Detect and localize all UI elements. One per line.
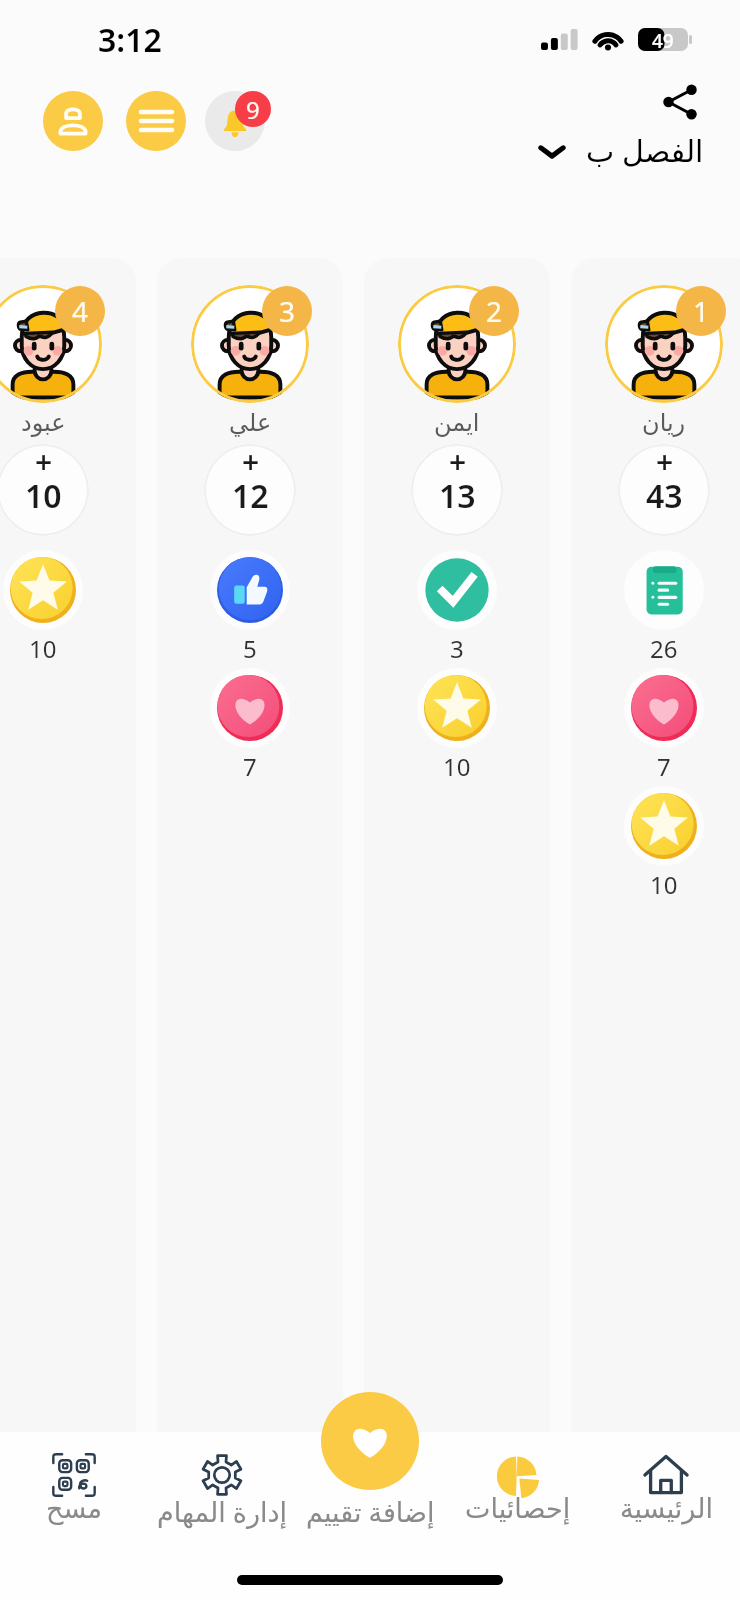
staticText: 3:12 — [98, 18, 162, 62]
button[interactable]: Menu — [126, 91, 186, 151]
button[interactable]: إحصائيات — [444, 1432, 592, 1600]
staticText: 4 — [72, 292, 89, 330]
button[interactable]: 2 — [364, 258, 550, 1600]
staticText: 2 — [486, 292, 503, 330]
button[interactable] — [624, 550, 704, 630]
staticText: إحصائيات — [465, 1493, 571, 1524]
button[interactable]: + — [204, 444, 296, 536]
staticText: 3 — [450, 632, 464, 665]
staticText: + — [656, 444, 674, 482]
button[interactable] — [210, 550, 290, 630]
staticText: + — [449, 444, 467, 482]
button[interactable]: + — [618, 444, 710, 536]
staticText: 9 — [246, 93, 260, 126]
staticText: 10 — [650, 868, 678, 901]
staticText: + — [242, 444, 260, 482]
button[interactable] — [624, 668, 704, 748]
button[interactable]: إدارة المهام — [148, 1432, 296, 1600]
button[interactable]: 3 — [157, 258, 343, 1600]
button[interactable] — [624, 786, 704, 866]
staticText: عبود — [21, 409, 66, 437]
button[interactable]: Share — [656, 78, 704, 126]
button[interactable]: Notifications — [205, 91, 265, 151]
button[interactable]: إضافة تقييم — [296, 1432, 444, 1600]
staticText: + — [35, 444, 53, 482]
staticText: 10 — [29, 632, 57, 665]
staticText: 43 — [646, 474, 683, 518]
staticText: الفصل ب — [586, 130, 704, 171]
button[interactable] — [210, 668, 290, 748]
staticText: إدارة المهام — [157, 1493, 287, 1530]
staticText: مسح — [46, 1493, 102, 1524]
button[interactable]: الفصل ب — [536, 130, 704, 171]
button[interactable]: الرئيسية — [592, 1432, 740, 1600]
staticText: 10 — [443, 750, 471, 783]
staticText: 10 — [25, 474, 62, 518]
button[interactable]: + — [411, 444, 503, 536]
button[interactable]: 1 — [571, 258, 740, 1600]
staticText: 26 — [650, 632, 678, 665]
button[interactable]: + — [0, 444, 89, 536]
staticText: إضافة تقييم — [306, 1493, 435, 1530]
staticText: علي — [229, 409, 272, 437]
button[interactable] — [417, 550, 497, 630]
button[interactable]: 4 — [0, 258, 136, 1600]
staticText: 3 — [279, 292, 296, 330]
staticText: 12 — [232, 474, 269, 518]
staticText: 1 — [693, 292, 710, 330]
staticText: ايمن — [434, 409, 480, 437]
button[interactable] — [417, 668, 497, 748]
staticText: 7 — [243, 750, 257, 783]
staticText: 49 — [652, 28, 674, 51]
button[interactable]: Profile — [43, 91, 103, 151]
button[interactable] — [3, 550, 83, 630]
staticText: ريان — [642, 409, 686, 437]
staticText: الرئيسية — [620, 1493, 713, 1524]
staticText: 13 — [439, 474, 476, 518]
staticText: 5 — [243, 632, 257, 665]
staticText: 7 — [657, 750, 671, 783]
button[interactable]: مسح — [0, 1432, 148, 1600]
